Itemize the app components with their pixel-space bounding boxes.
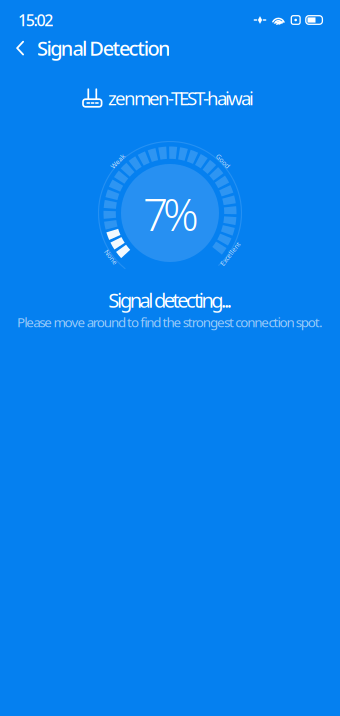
staticText: Signal Detection — [37, 35, 171, 61]
staticText: Please move around to find the strongest… — [17, 313, 323, 331]
button[interactable]: Back — [2, 28, 38, 68]
staticText: Good — [214, 157, 231, 165]
staticText: Signal detecting... — [108, 287, 232, 313]
staticText: None — [102, 253, 119, 261]
staticText: zenmen-TEST-haiwai — [108, 86, 254, 110]
staticText: Weak — [109, 157, 127, 165]
staticText: 15:02 — [18, 9, 53, 31]
staticText: Excellent — [216, 250, 244, 258]
staticText: 7% — [143, 185, 199, 243]
